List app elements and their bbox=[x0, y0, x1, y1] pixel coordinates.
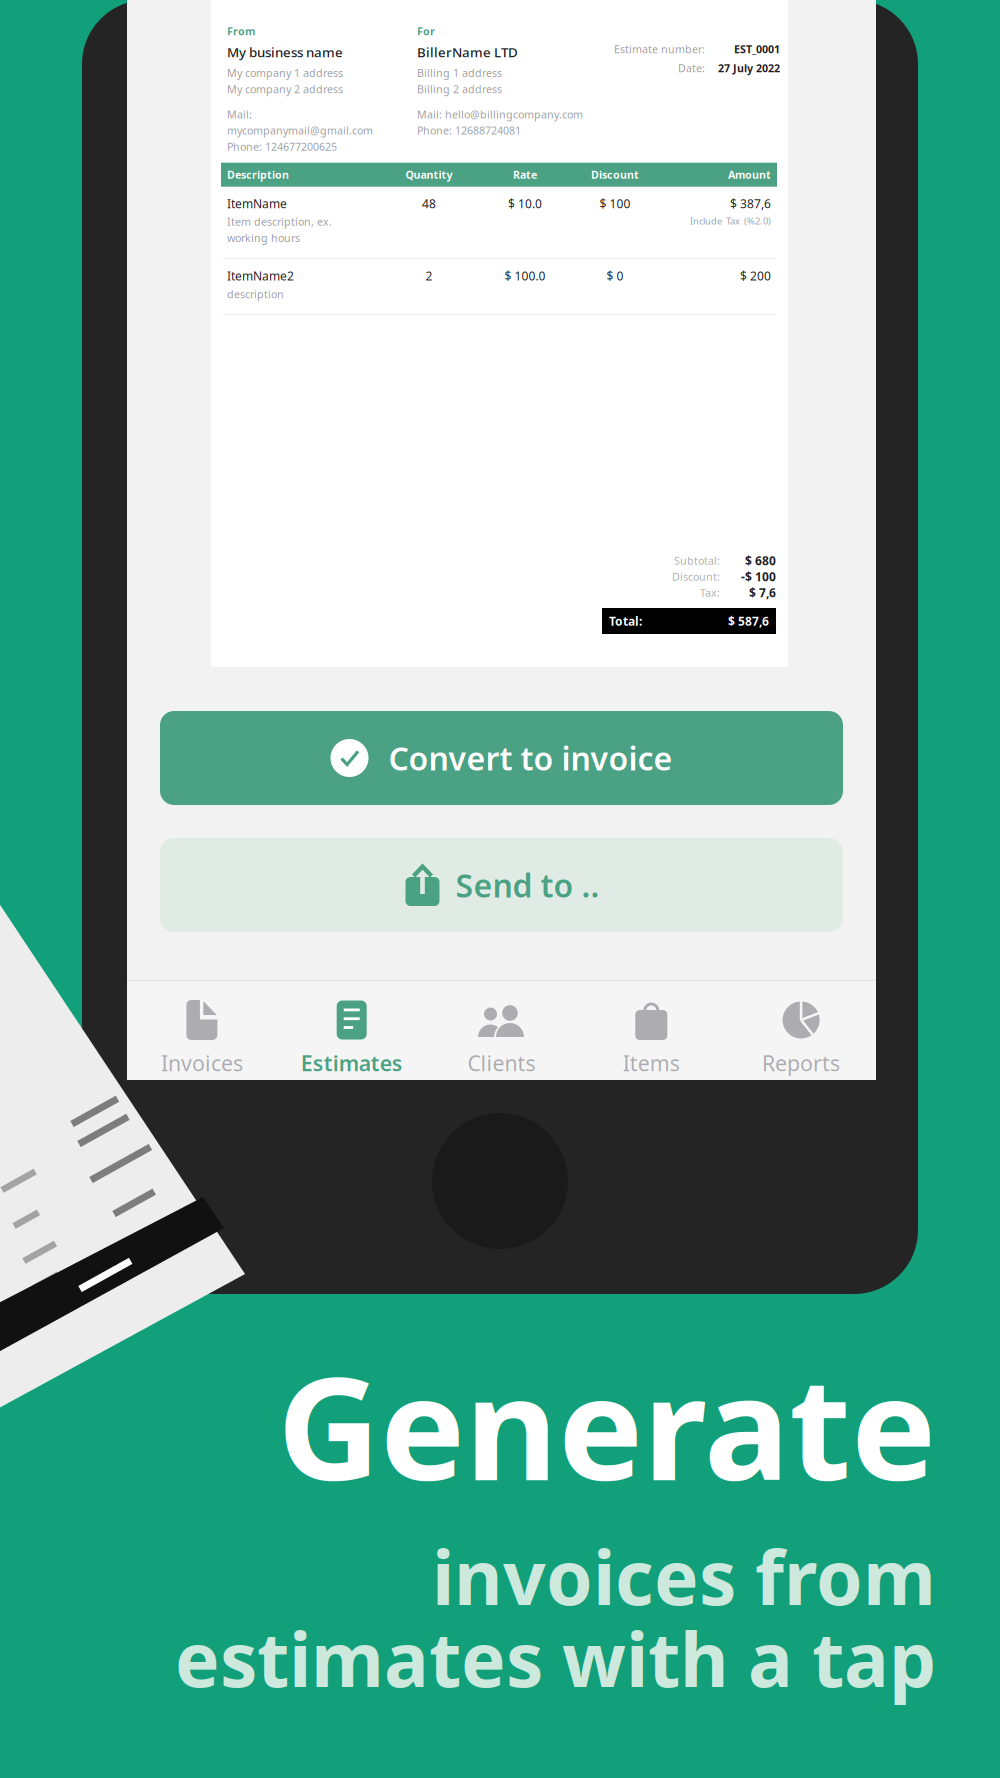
staticText: $ 200 bbox=[740, 268, 771, 284]
staticText: From bbox=[227, 24, 255, 38]
staticText: Rate bbox=[513, 168, 537, 182]
staticText: Discount bbox=[591, 168, 639, 182]
staticText: Quantity bbox=[405, 168, 452, 182]
button[interactable]: Convert to invoice bbox=[160, 711, 843, 805]
staticText: Total: bbox=[609, 613, 642, 629]
staticText: Mail: hello@billingcompany.com bbox=[417, 107, 583, 121]
staticText: ItemName bbox=[227, 196, 287, 212]
staticText: $ 10.0 bbox=[508, 196, 542, 212]
staticText: My company 2 address bbox=[227, 82, 343, 96]
staticText: $ 387,6 bbox=[730, 196, 771, 212]
staticText: Mail: bbox=[227, 107, 252, 121]
staticText: My company 1 address bbox=[227, 66, 343, 80]
button[interactable]: Estimates bbox=[277, 981, 427, 1080]
staticText: Reports bbox=[762, 1049, 840, 1077]
staticText: Invoices bbox=[161, 1049, 243, 1077]
staticText: 2 bbox=[425, 268, 432, 284]
staticText: My business name bbox=[227, 43, 343, 61]
button[interactable]: Reports bbox=[726, 981, 876, 1080]
staticText: description bbox=[227, 287, 284, 301]
staticText: $ 100.0 bbox=[504, 268, 545, 284]
staticText: For bbox=[417, 24, 435, 38]
staticText: Estimates bbox=[301, 1049, 403, 1077]
staticText: Item description, ex. bbox=[227, 215, 332, 229]
staticText: estimates with a tap bbox=[175, 1608, 936, 1708]
staticText: 27 July 2022 bbox=[718, 61, 780, 75]
staticText: $ 680 bbox=[745, 552, 776, 568]
staticText: Send to .. bbox=[455, 864, 599, 906]
button[interactable]: Items bbox=[576, 981, 726, 1080]
staticText: mycompanymail@gmail.com bbox=[227, 123, 373, 138]
staticText: Items bbox=[623, 1049, 680, 1077]
staticText: BillerName LTD bbox=[417, 43, 518, 61]
staticText: Include Tax (%2.0) bbox=[690, 215, 771, 227]
staticText: Subtotal: bbox=[674, 553, 720, 568]
staticText: $ 7,6 bbox=[749, 584, 776, 600]
staticText: working hours bbox=[227, 231, 300, 245]
staticText: Convert to invoice bbox=[388, 737, 672, 779]
staticText: $ 100 bbox=[599, 196, 630, 212]
staticText: Generate bbox=[277, 1330, 936, 1520]
button[interactable]: Send to .. bbox=[160, 838, 843, 932]
staticText: Phone: 12688724081 bbox=[417, 123, 521, 138]
staticText: ItemName2 bbox=[227, 268, 294, 284]
staticText: Phone: 124677200625 bbox=[227, 139, 337, 154]
staticText: $ 0 bbox=[606, 268, 623, 284]
staticText: Description bbox=[227, 168, 289, 182]
staticText: Clients bbox=[467, 1049, 535, 1077]
button[interactable]: Invoices bbox=[127, 981, 277, 1080]
staticText: 48 bbox=[422, 196, 436, 212]
staticText: -$ 100 bbox=[741, 568, 776, 584]
staticText: Billing 2 address bbox=[417, 82, 502, 96]
staticText: Date: bbox=[678, 61, 705, 75]
staticText: Estimate number: bbox=[614, 42, 705, 56]
staticText: Billing 1 address bbox=[417, 66, 502, 80]
staticText: EST_0001 bbox=[734, 42, 780, 56]
staticText: Tax: bbox=[700, 585, 720, 600]
staticText: $ 587,6 bbox=[728, 613, 769, 629]
button[interactable]: Clients bbox=[427, 981, 576, 1080]
staticText: Amount bbox=[728, 168, 771, 182]
staticText: invoices from bbox=[432, 1526, 936, 1626]
staticText: Discount: bbox=[672, 569, 720, 584]
